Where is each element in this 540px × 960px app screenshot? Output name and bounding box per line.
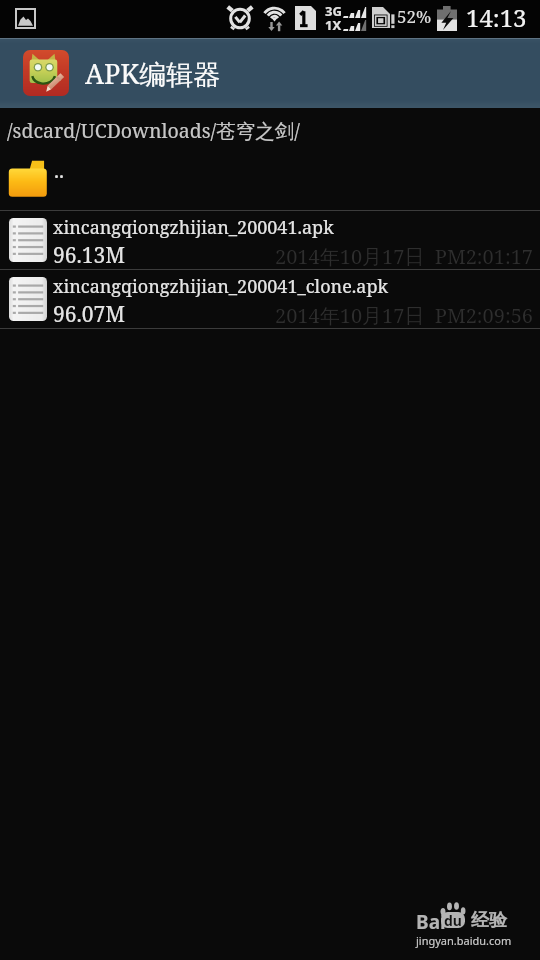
- button[interactable]: ..: [0, 152, 540, 210]
- staticText: ..: [54, 157, 64, 184]
- button[interactable]: APK Editor: [23, 50, 69, 96]
- button[interactable]: xincangqiongzhijian_200041_clone.apk: [0, 270, 540, 328]
- staticText: 1X: [325, 16, 342, 34]
- staticText: 2014年10月17日 PM2:01:17: [275, 243, 534, 270]
- button[interactable]: xincangqiongzhijian_200041.apk: [0, 211, 540, 269]
- staticText: jingyan.baidu.com: [416, 933, 512, 948]
- staticText: xincangqiongzhijian_200041.apk: [53, 215, 334, 240]
- staticText: /sdcard/UCDownloads/苍穹之剑/: [7, 117, 300, 144]
- staticText: 2014年10月17日 PM2:09:56: [275, 302, 534, 329]
- staticText: 经验: [471, 909, 507, 932]
- staticText: Bai: [416, 909, 446, 935]
- staticText: du: [444, 911, 462, 927]
- staticText: 14:13: [466, 1, 527, 34]
- staticText: 96.13M: [53, 241, 125, 270]
- staticText: 3G: [325, 2, 342, 20]
- staticText: 52%: [397, 5, 432, 28]
- staticText: xincangqiongzhijian_200041_clone.apk: [53, 274, 389, 299]
- staticText: 96.07M: [53, 300, 125, 329]
- staticText: APK编辑器: [85, 55, 221, 92]
